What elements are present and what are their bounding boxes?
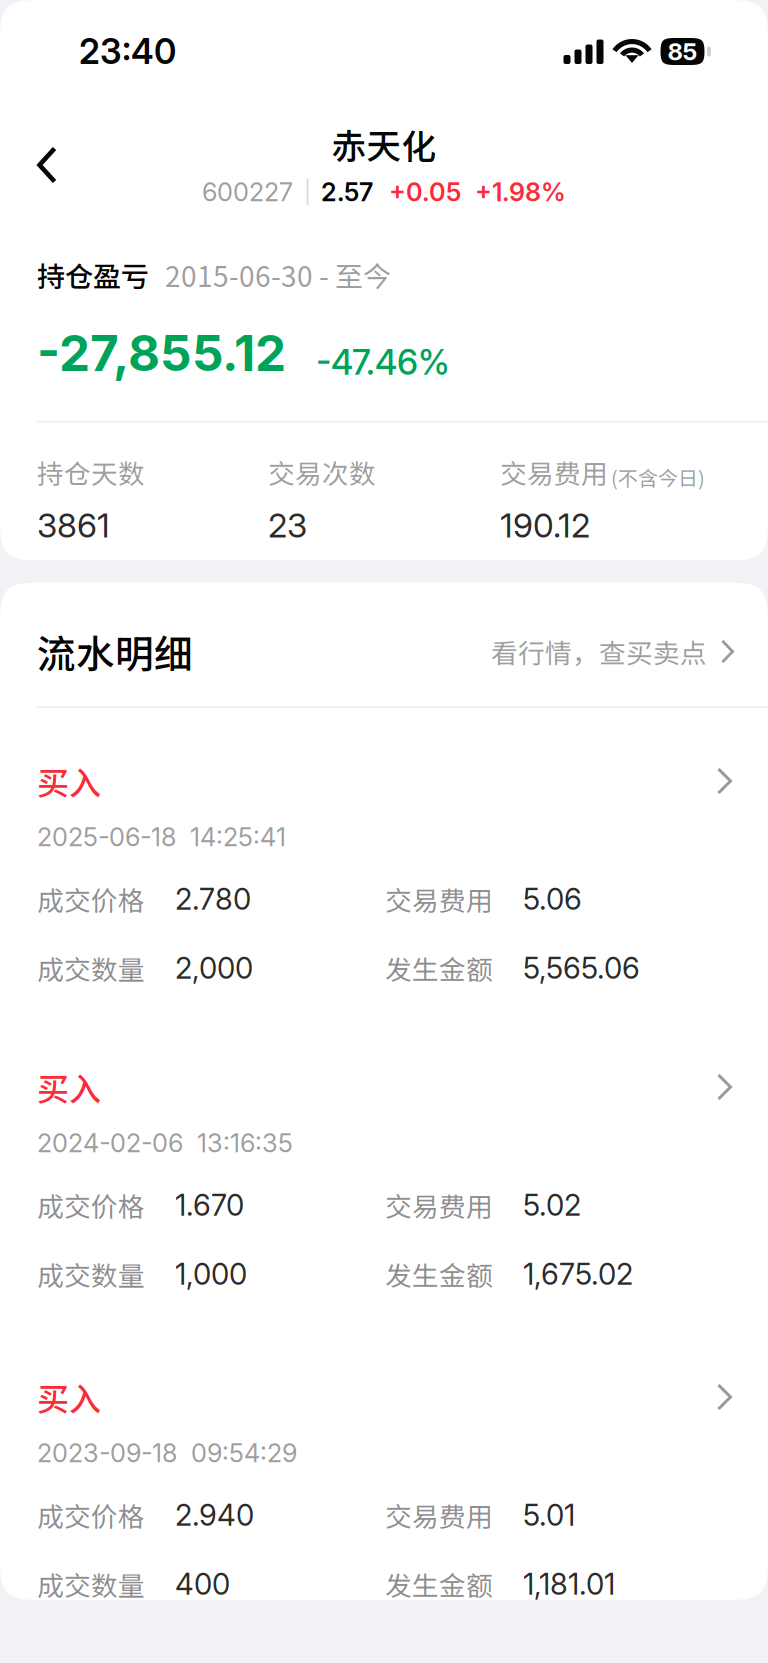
staticText: (不含今日) <box>611 462 705 491</box>
staticText: 85 <box>667 37 697 66</box>
staticText: 发生金额 <box>385 1255 493 1293</box>
staticText: 买入 <box>37 1374 101 1420</box>
staticText: 5.06 <box>523 881 582 917</box>
staticText: 流水明细 <box>37 623 193 679</box>
staticText: 5.02 <box>523 1187 581 1223</box>
staticText: 发生金额 <box>385 949 493 987</box>
staticText: 3861 <box>37 505 110 545</box>
staticText: 2.940 <box>175 1497 254 1533</box>
staticText: 600227 <box>202 177 293 207</box>
staticText: 2.57 <box>321 177 373 207</box>
staticText: 持仓天数 <box>37 453 145 491</box>
staticText: 交易费用 <box>385 1186 493 1224</box>
staticText: 买入 <box>37 1064 101 1110</box>
staticText: 23:40 <box>79 30 176 72</box>
staticText: 买入 <box>37 758 101 804</box>
staticText: 2015-06-30 - 至今 <box>165 254 391 295</box>
staticText: 成交数量 <box>37 949 145 987</box>
staticText: 交易费用 <box>385 1496 493 1534</box>
staticText: 交易费用 <box>385 880 493 918</box>
staticText: 赤天化 <box>331 119 436 169</box>
staticText: 发生金额 <box>385 1565 493 1603</box>
staticText: 成交数量 <box>37 1255 145 1293</box>
staticText: 2024-02-06 13:16:35 <box>37 1128 293 1158</box>
staticText: 190.12 <box>500 505 590 545</box>
staticText: -27,855.12 <box>37 323 286 383</box>
staticText: 5.01 <box>523 1497 575 1533</box>
staticText: 成交价格 <box>37 880 145 918</box>
button[interactable]: 买入 <box>0 1379 768 1600</box>
staticText: 看行情，查买卖点 <box>491 632 707 671</box>
staticText: 2023-09-18 09:54:29 <box>37 1438 297 1468</box>
staticText: | <box>304 179 311 205</box>
staticText: +0.05 <box>389 177 461 207</box>
staticText: 2025-06-18 14:25:41 <box>37 822 286 852</box>
staticText: 1,675.02 <box>523 1256 633 1292</box>
staticText: +1.98% <box>475 177 566 207</box>
staticText: 成交价格 <box>37 1186 145 1224</box>
staticText: 5,565.06 <box>523 950 640 986</box>
staticText: 2,000 <box>175 950 253 986</box>
staticText: 成交数量 <box>37 1565 145 1603</box>
staticText: 1.670 <box>175 1187 244 1223</box>
button[interactable]: 返回 <box>14 132 80 198</box>
staticText: 1,181.01 <box>523 1566 615 1602</box>
staticText: 交易费用 <box>500 453 608 491</box>
staticText: 400 <box>175 1566 230 1602</box>
staticText: 1,000 <box>175 1256 247 1292</box>
staticText: 交易次数 <box>268 453 376 491</box>
button[interactable]: 买入 <box>0 763 768 984</box>
staticText: 2.780 <box>175 881 251 917</box>
button[interactable]: 买入 <box>0 1069 768 1290</box>
staticText: 23 <box>268 505 307 545</box>
staticText: 持仓盈亏 <box>37 254 149 295</box>
staticText: 成交价格 <box>37 1496 145 1534</box>
staticText: -47.46% <box>316 341 450 383</box>
button[interactable]: 流水明细 <box>0 582 768 706</box>
